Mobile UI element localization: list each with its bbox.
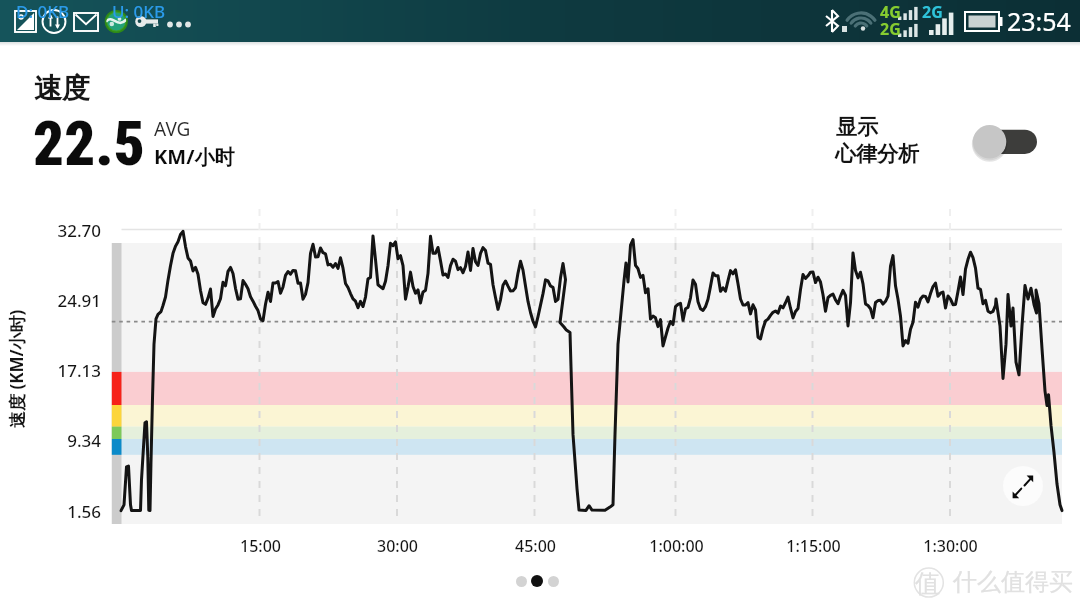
button[interactable]: Expand chart <box>1003 466 1043 506</box>
staticText: AVG <box>154 116 191 142</box>
staticText: 15:00 <box>240 535 281 557</box>
staticText: 45:00 <box>515 535 556 557</box>
staticText: 1:15:00 <box>786 535 841 557</box>
button[interactable]: Show heart rate analysis toggle <box>828 112 1043 172</box>
staticText: 30:00 <box>377 535 418 557</box>
staticText: 22.5 <box>33 108 146 179</box>
staticText: 1:00:00 <box>649 535 704 557</box>
staticText: 2G <box>922 1 943 23</box>
button[interactable]: Page 3 <box>546 574 560 588</box>
button[interactable]: Page 2, selected <box>530 574 544 588</box>
staticText: 速度 (KM/小时) <box>5 309 28 428</box>
staticText: 24.91 <box>57 289 101 312</box>
staticText: 2G <box>880 18 901 40</box>
staticText: D: 0KB <box>16 0 70 23</box>
staticText: 速度 <box>34 71 90 106</box>
staticText: 9.34 <box>67 429 101 452</box>
staticText: 什么值得买 <box>953 567 1073 597</box>
button[interactable]: Page 1 <box>514 574 528 588</box>
staticText: 23:54 <box>1007 4 1071 38</box>
staticText: 心律分析 <box>835 141 919 167</box>
staticText: 1:30:00 <box>923 535 978 557</box>
staticText: 值 <box>915 568 940 599</box>
staticText: 1.56 <box>67 500 101 523</box>
staticText: 显示 <box>836 114 878 140</box>
staticText: 4G <box>880 1 901 23</box>
staticText: 32.70 <box>57 219 101 242</box>
staticText: U: 0KB <box>112 0 166 23</box>
staticText: KM/小时 <box>154 143 235 170</box>
staticText: 17.13 <box>57 359 101 382</box>
